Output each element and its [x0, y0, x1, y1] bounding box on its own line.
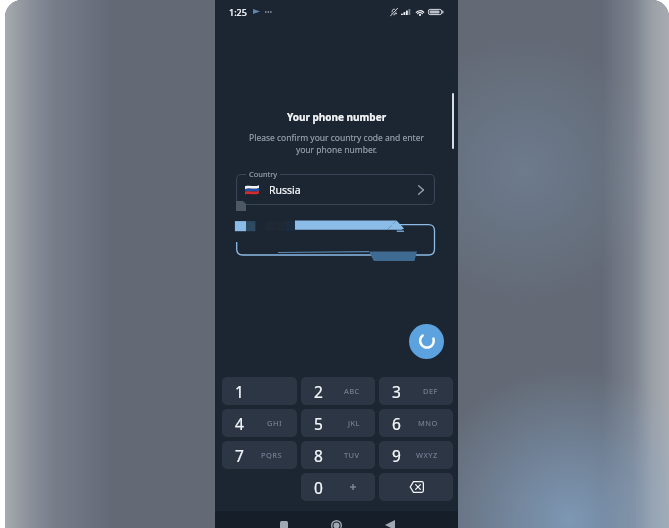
- staticText: JKL: [348, 418, 360, 428]
- button[interactable]: Home: [309, 518, 363, 528]
- staticText: 6: [392, 413, 401, 434]
- button[interactable]: 5: [301, 409, 375, 437]
- button[interactable]: 6: [379, 409, 453, 437]
- button[interactable]: 3: [379, 377, 453, 405]
- button[interactable]: 2: [301, 377, 375, 405]
- button[interactable]: Continue: [409, 324, 444, 359]
- button[interactable]: Russia: [236, 174, 435, 205]
- staticText: 3: [392, 381, 401, 402]
- staticText: Please confirm your country code and ent…: [215, 132, 458, 156]
- button[interactable]: [215, 0, 458, 528]
- button[interactable]: 8: [301, 441, 375, 469]
- staticText: 5: [314, 413, 323, 434]
- staticText: 2: [314, 381, 323, 402]
- staticText: 1: [235, 381, 244, 402]
- staticText: 9: [392, 445, 401, 466]
- staticText: WXYZ: [416, 450, 438, 460]
- staticText: 0: [314, 477, 323, 498]
- button[interactable]: Recent apps: [257, 518, 311, 528]
- staticText: MNO: [418, 418, 438, 428]
- staticText: 1:25: [229, 6, 247, 18]
- staticText: ABC: [344, 386, 360, 396]
- staticText: TUV: [344, 450, 360, 460]
- button[interactable]: 0: [301, 473, 375, 501]
- staticText: 7: [235, 445, 244, 466]
- button[interactable]: Back: [363, 518, 417, 528]
- button[interactable]: 4: [222, 409, 297, 437]
- staticText: Country: [249, 169, 278, 179]
- staticText: 8: [314, 445, 323, 466]
- staticText: Your phone number: [215, 110, 458, 124]
- button[interactable]: 9: [379, 441, 453, 469]
- staticText: DEF: [423, 386, 438, 396]
- staticText: 4: [235, 413, 244, 434]
- button[interactable]: Backspace: [379, 473, 453, 501]
- button[interactable]: 7: [222, 441, 297, 469]
- staticText: PQRS: [261, 450, 282, 460]
- staticText: Russia: [269, 183, 301, 197]
- button[interactable]: 1: [222, 377, 297, 405]
- staticText: GHI: [267, 418, 282, 428]
